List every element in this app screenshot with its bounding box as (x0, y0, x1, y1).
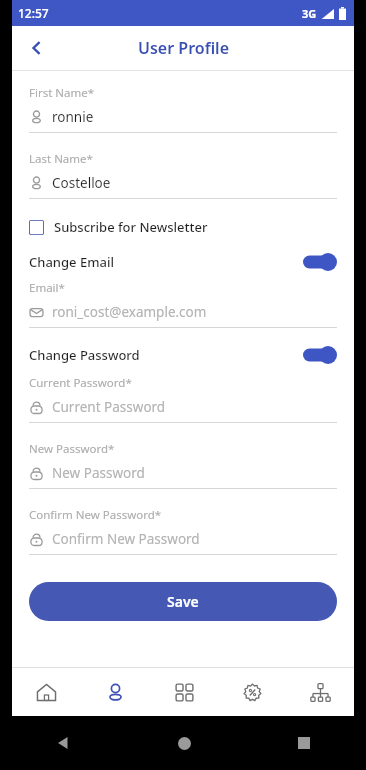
button[interactable]: Network (286, 668, 354, 716)
button[interactable]: First Name* (29, 85, 337, 133)
button[interactable]: Back (18, 29, 56, 67)
staticText: 3G (302, 6, 317, 21)
staticText: Email* (29, 280, 65, 296)
staticText: Confirm New Password* (29, 507, 162, 523)
button[interactable]: Categories (150, 668, 218, 716)
staticText: Subscribe for Newsletter (54, 218, 208, 236)
staticText: Last Name* (29, 151, 93, 167)
button[interactable]: New Password* (29, 441, 337, 489)
button[interactable]: Current Password* (29, 375, 337, 423)
button[interactable]: Email* (29, 280, 337, 328)
staticText: Confirm New Password (52, 530, 200, 548)
staticText: roni_cost@example.com (52, 303, 207, 321)
staticText: Costelloe (52, 174, 111, 192)
staticText: Current Password (52, 398, 166, 416)
staticText: Change Email (29, 253, 114, 271)
staticText: Current Password* (29, 375, 132, 391)
staticText: First Name* (29, 85, 95, 101)
button[interactable]: Last Name* (29, 151, 337, 199)
staticText: Save (167, 592, 199, 611)
button[interactable]: Home (12, 668, 81, 716)
button[interactable]: Save (29, 582, 337, 621)
button[interactable]: Subscribe for Newsletter (29, 218, 337, 236)
button[interactable]: Confirm New Password* (29, 507, 337, 555)
button[interactable]: Change Password (29, 346, 337, 364)
button[interactable]: Profile (81, 668, 150, 716)
button[interactable]: Offers (218, 668, 286, 716)
staticText: New Password (52, 464, 145, 482)
staticText: User Profile (138, 37, 229, 59)
staticText: New Password* (29, 441, 115, 457)
staticText: 12:57 (18, 5, 49, 21)
staticText: Change Password (29, 346, 140, 364)
staticText: ronnie (52, 108, 94, 126)
button[interactable]: Change Email (29, 253, 337, 271)
